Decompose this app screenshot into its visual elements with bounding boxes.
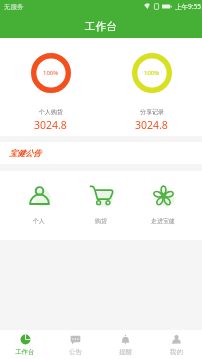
staticText: 3024.8 (34, 118, 67, 132)
staticText: 工作台 (85, 20, 117, 33)
staticText: 3024.8 (135, 118, 168, 132)
staticText: 工作台 (15, 348, 35, 356)
button[interactable]: 100% (101, 38, 202, 136)
button[interactable]: 工作台 (0, 330, 50, 359)
staticText: 个人购货 (39, 108, 63, 116)
staticText: 我的 (170, 348, 183, 356)
button[interactable]: 购货 (70, 171, 132, 240)
button[interactable]: 个人 (8, 171, 70, 240)
staticText: 无服务 (4, 3, 24, 11)
button[interactable]: 100% (0, 38, 101, 136)
staticText: 100% (43, 69, 59, 77)
staticText: 购货 (95, 217, 107, 225)
staticText: 提醒 (119, 348, 132, 356)
staticText: 宝健公告 (9, 148, 41, 158)
staticText: 100% (144, 69, 160, 77)
staticText: 公告 (69, 348, 82, 356)
button[interactable]: 提醒 (100, 330, 151, 359)
button[interactable]: 我的 (151, 330, 202, 359)
button[interactable]: 走进宝健 (132, 171, 194, 240)
staticText: 上午9:55 (175, 2, 201, 11)
staticText: 走进宝健 (151, 217, 175, 225)
button[interactable]: 公告 (50, 330, 100, 359)
button[interactable]: 宝健公告 (0, 142, 202, 164)
staticText: 个人 (33, 217, 45, 225)
staticText: 分享记录 (140, 108, 164, 116)
